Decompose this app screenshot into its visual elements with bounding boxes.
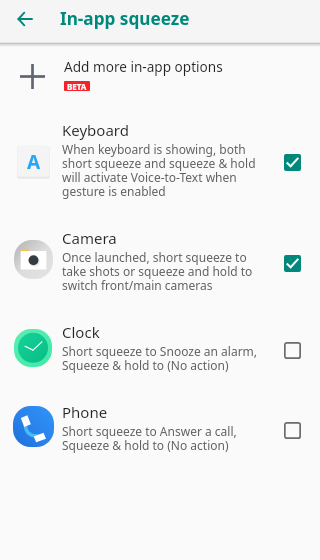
button[interactable]: Unchecked	[284, 342, 301, 359]
button[interactable]: Unchecked	[284, 422, 301, 439]
staticText: Camera	[62, 228, 117, 248]
button[interactable]: Camera	[0, 214, 320, 308]
button[interactable]: Checked	[284, 154, 301, 171]
staticText: Once launched, short squeeze to take sho…	[62, 249, 253, 294]
staticText: Keyboard	[62, 120, 129, 140]
button[interactable]: Back	[5, 0, 45, 39]
button[interactable]: Phone	[0, 388, 320, 468]
staticText: Short squeeze to Answer a call, Squeeze …	[62, 423, 237, 454]
staticText: Add more in-app options	[64, 57, 223, 76]
staticText: Clock	[62, 322, 100, 342]
staticText: A	[27, 149, 41, 175]
button[interactable]: A	[0, 106, 320, 214]
staticText: BETA	[67, 81, 87, 91]
staticText: When keyboard is showing, both short squ…	[62, 141, 256, 200]
staticText: Phone	[62, 402, 108, 422]
staticText: Short squeeze to Snooze an alarm, Squeez…	[62, 343, 258, 374]
button[interactable]: Checked	[284, 255, 301, 272]
button[interactable]: Clock	[0, 308, 320, 388]
staticText: In-app squeeze	[60, 7, 190, 30]
button[interactable]: Add more in-app options	[0, 47, 320, 106]
